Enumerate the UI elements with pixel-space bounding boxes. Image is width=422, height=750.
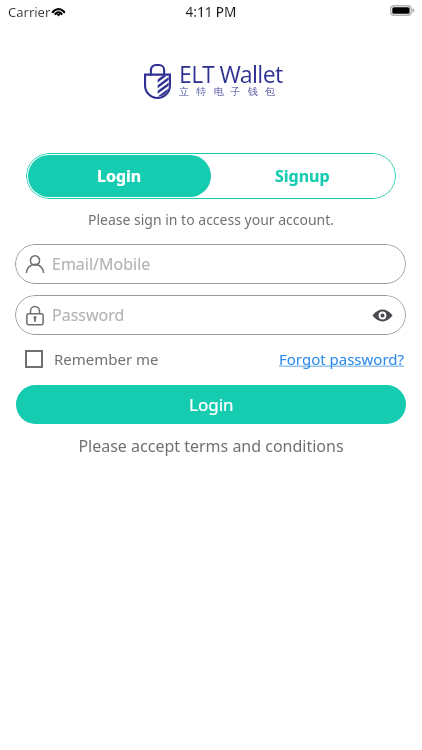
staticText: Remember me xyxy=(54,349,159,369)
staticText: Login xyxy=(97,165,142,187)
button[interactable]: Remember me xyxy=(25,349,159,369)
button[interactable]: Password xyxy=(15,295,406,335)
staticText: Email/Mobile xyxy=(52,253,151,275)
staticText: ELT Wallet xyxy=(179,58,283,89)
staticText: Login xyxy=(189,393,234,416)
button[interactable]: Login xyxy=(16,385,406,424)
staticText: Signup xyxy=(275,165,330,187)
button[interactable]: Signup xyxy=(211,155,394,197)
button[interactable]: Login xyxy=(28,155,211,197)
staticText: Please accept terms and conditions xyxy=(0,435,422,457)
staticText: Password xyxy=(52,304,125,326)
button[interactable]: Show password xyxy=(372,308,393,322)
staticText: Carrier xyxy=(8,3,51,21)
button[interactable]: Email/Mobile xyxy=(15,244,406,284)
staticText: 4:11 PM xyxy=(0,3,422,21)
staticText: Forgot password? xyxy=(279,349,405,369)
staticText: 立特电子钱包 xyxy=(179,85,283,98)
button[interactable]: Forgot password? xyxy=(279,349,405,369)
staticText: Please sign in to access your account. xyxy=(0,210,422,229)
